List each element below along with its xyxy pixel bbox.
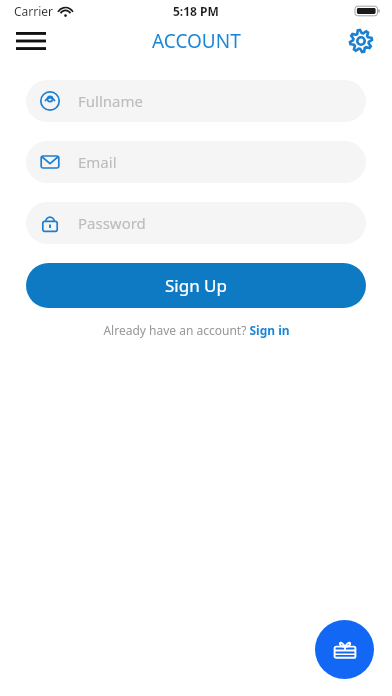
button[interactable]: Settings: [339, 22, 383, 60]
staticText: Password: [78, 213, 146, 233]
staticText: Email: [78, 152, 117, 172]
staticText: Already have an account? Sign in: [103, 322, 290, 338]
button[interactable]: Password: [26, 202, 366, 244]
staticText: ACCOUNT: [152, 28, 241, 54]
button[interactable]: Sign Up: [26, 263, 366, 308]
button[interactable]: Already have an account? Sign in: [0, 322, 392, 338]
button[interactable]: Email: [26, 141, 366, 183]
button[interactable]: Fullname: [26, 80, 366, 122]
staticText: 5:18 PM: [173, 3, 219, 19]
staticText: Sign Up: [165, 274, 227, 297]
staticText: Fullname: [78, 91, 143, 111]
button[interactable]: Gifts: [315, 620, 374, 679]
button[interactable]: Menu: [9, 22, 53, 60]
staticText: Carrier: [14, 3, 54, 19]
